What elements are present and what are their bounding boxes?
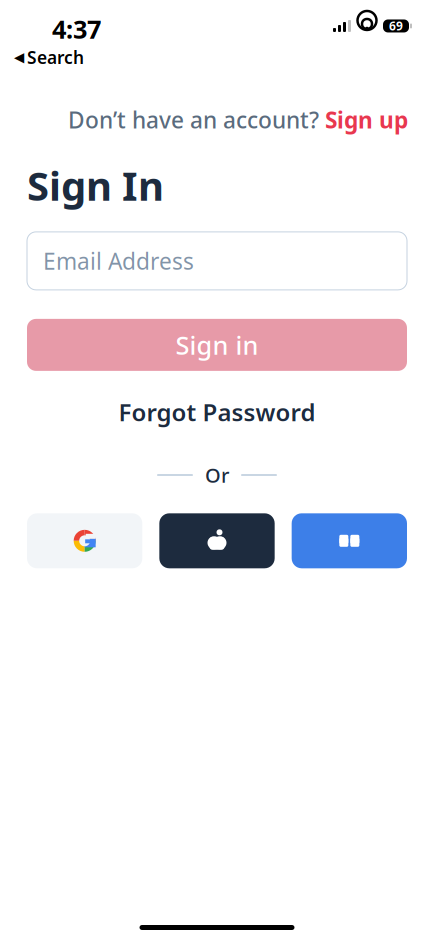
staticText: ◀ bbox=[14, 50, 24, 65]
staticText: Or bbox=[205, 462, 229, 488]
button[interactable]: Sign in with Apple bbox=[159, 513, 275, 568]
button[interactable]: Forgot Password bbox=[108, 390, 325, 434]
staticText: Email Address bbox=[43, 246, 194, 276]
staticText: 69 bbox=[389, 18, 403, 34]
button[interactable]: Sign in bbox=[27, 319, 407, 371]
button[interactable]: Sign in with Dropbox bbox=[292, 513, 407, 568]
staticText: Forgot Password bbox=[118, 396, 315, 428]
button[interactable]: Sign in with Google bbox=[27, 513, 142, 568]
staticText: Sign in bbox=[175, 328, 258, 362]
staticText: Search bbox=[27, 46, 84, 69]
button[interactable]: Don’t have an account? bbox=[64, 99, 412, 141]
staticText: Sign up bbox=[325, 105, 408, 135]
staticText: Sign In bbox=[27, 159, 164, 212]
staticText: Don’t have an account? bbox=[68, 105, 319, 135]
button[interactable]: Email Address bbox=[27, 232, 407, 290]
staticText: 4:37 bbox=[52, 12, 101, 46]
